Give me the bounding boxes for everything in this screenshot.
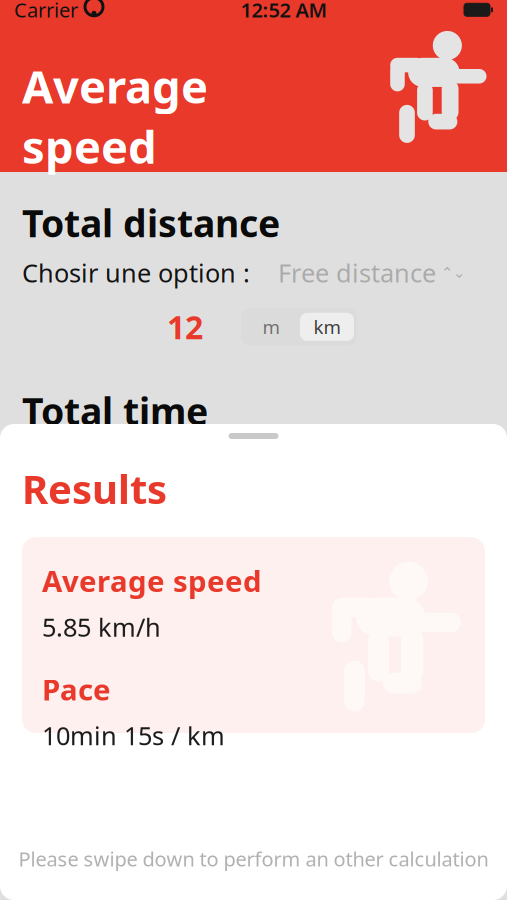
staticText: m [262,314,279,339]
button[interactable]: Chosir une option : [0,248,507,288]
staticText: Chosir une option : [22,256,250,289]
staticText: 12 [167,306,203,348]
staticText: 5.85 km/h [42,610,161,644]
staticText: Results [22,462,167,515]
button[interactable]: km [300,313,354,341]
staticText: Total distance [22,198,280,248]
staticText: Carrier [14,0,78,23]
button[interactable]: m [242,311,300,343]
staticText: Free distance [278,256,436,289]
staticText: 12:52 AM [240,0,327,23]
staticText: Pace [42,670,111,709]
staticText: Please swipe down to perform an other ca… [18,845,488,872]
staticText: Average speed [42,561,262,600]
staticText: Total time [22,386,208,436]
staticText: 10min 15s / km [42,719,225,752]
staticText: km [313,314,340,339]
staticText: ⌃⌄ [436,264,465,281]
staticText: Average speed [22,56,208,176]
